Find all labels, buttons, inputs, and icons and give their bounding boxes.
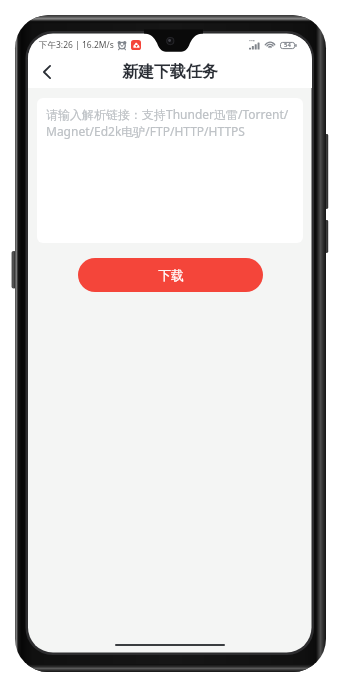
- staticText: 54: [284, 41, 291, 49]
- button[interactable]: 下载: [78, 258, 263, 292]
- button[interactable]: Back: [33, 57, 61, 87]
- staticText: 新建下载任务: [122, 62, 218, 82]
- staticText: 请输入解析链接：支持Thunder迅雷/Torrent/Magnet/Ed2k电…: [46, 106, 294, 139]
- staticText: 下午3:26 | 16.2M/s: [39, 39, 114, 51]
- button[interactable]: 请输入解析链接：支持Thunder迅雷/Torrent/Magnet/Ed2k电…: [37, 98, 303, 243]
- staticText: 下载: [158, 267, 184, 283]
